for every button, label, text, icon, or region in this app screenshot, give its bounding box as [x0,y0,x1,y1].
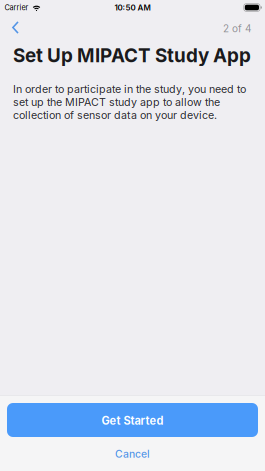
staticText: 2 of 4 [223,22,251,35]
staticText: Get Started [101,414,163,427]
staticText: Cancel [115,448,150,460]
staticText: Carrier [4,3,28,12]
staticText: In order to participate in the study, yo… [13,83,246,121]
button[interactable]: Cancel [0,442,265,465]
button[interactable]: Get Started [7,403,258,437]
button[interactable]: Back [0,17,31,40]
staticText: Set Up MIPACT Study App [13,44,251,67]
staticText: 10:50 AM [114,3,150,12]
